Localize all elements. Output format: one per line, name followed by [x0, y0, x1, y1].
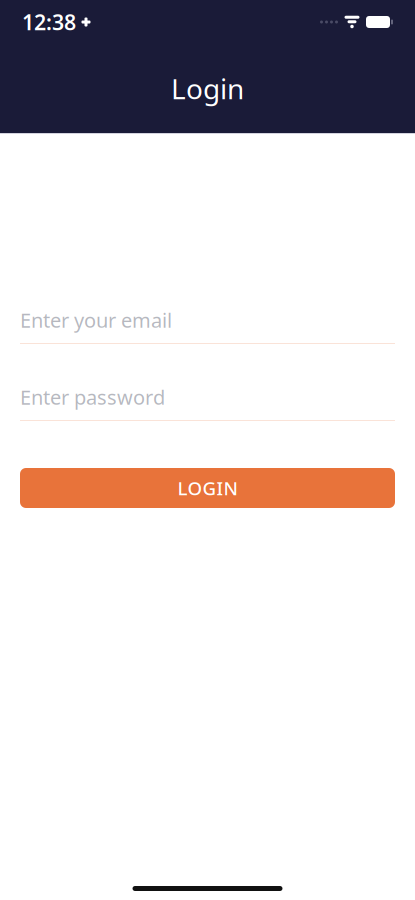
staticText: Login [171, 70, 244, 107]
staticText: 12:38 [22, 8, 76, 36]
button[interactable]: LOGIN [20, 468, 395, 508]
button[interactable]: Enter your email [20, 305, 395, 344]
staticText: Enter password [20, 384, 165, 410]
button[interactable]: Enter password [20, 382, 395, 421]
staticText: Enter your email [20, 307, 172, 333]
staticText: LOGIN [177, 476, 237, 500]
